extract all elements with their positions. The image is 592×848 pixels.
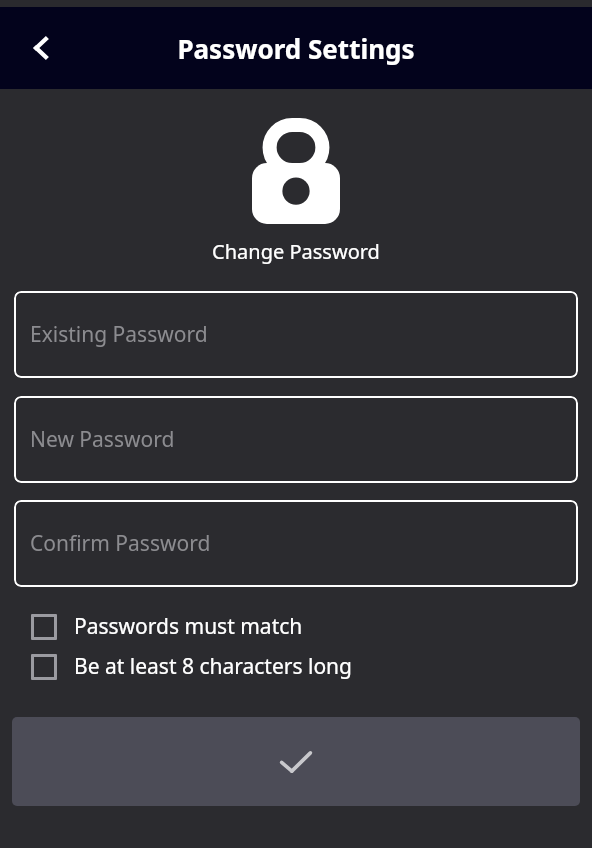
- staticText: Existing Password: [30, 320, 208, 349]
- button[interactable]: Confirm Password: [14, 500, 578, 587]
- staticText: Change Password: [0, 238, 592, 265]
- button[interactable]: New Password: [14, 396, 578, 483]
- staticText: Passwords must match: [74, 612, 303, 641]
- button[interactable]: Confirm: [12, 717, 580, 806]
- staticText: Confirm Password: [30, 529, 211, 558]
- staticText: Password Settings: [177, 31, 415, 66]
- staticText: New Password: [30, 425, 175, 454]
- button[interactable]: Be at least 8 characters long: [0, 652, 592, 681]
- staticText: Be at least 8 characters long: [74, 652, 352, 681]
- button[interactable]: Back: [14, 21, 68, 75]
- button[interactable]: Existing Password: [14, 291, 578, 378]
- button[interactable]: Passwords must match: [0, 612, 592, 641]
